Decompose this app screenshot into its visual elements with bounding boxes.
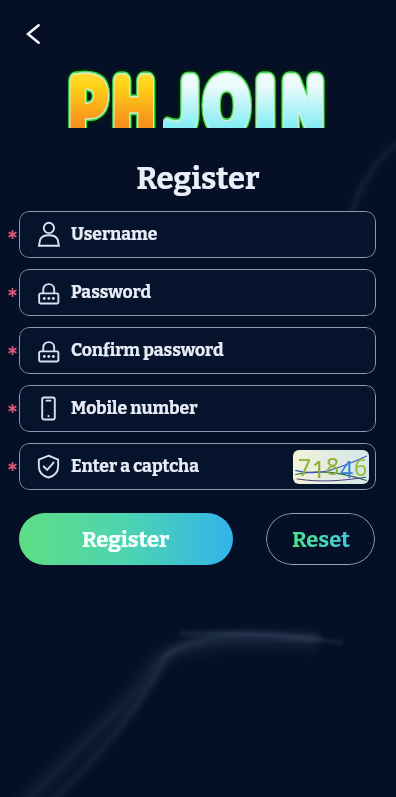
staticText: JOIN — [163, 48, 329, 128]
staticText: Enter a captcha — [71, 456, 199, 477]
staticText: 8 — [326, 450, 340, 481]
staticText: JOIN — [163, 48, 329, 128]
staticText: Mobile number — [71, 398, 198, 419]
button[interactable]: Mobile number — [19, 385, 376, 432]
staticText: Register — [0, 160, 396, 197]
staticText: 7 — [298, 451, 312, 482]
button[interactable]: Back — [11, 12, 53, 54]
staticText: 1 — [312, 453, 326, 484]
button[interactable]: Register — [19, 513, 233, 565]
staticText: PH — [67, 48, 160, 128]
staticText: Register — [82, 526, 170, 552]
button[interactable]: Confirm password — [19, 327, 376, 374]
staticText: Reset — [292, 526, 350, 552]
staticText: JOIN — [163, 48, 329, 128]
staticText: Username — [71, 224, 158, 245]
staticText: PH — [67, 48, 160, 128]
staticText: JOIN — [163, 48, 329, 128]
button[interactable]: Password — [19, 269, 376, 316]
button[interactable]: Enter a captcha — [19, 443, 376, 490]
button[interactable]: Refresh captcha — [293, 450, 369, 484]
staticText: Confirm password — [71, 340, 224, 361]
staticText: PH — [67, 48, 160, 128]
button[interactable]: Reset — [266, 513, 375, 565]
staticText: 4 — [340, 453, 354, 484]
staticText: PH — [67, 48, 160, 128]
staticText: PH — [67, 48, 160, 128]
staticText: JOIN — [163, 48, 329, 128]
button[interactable]: Username — [19, 211, 376, 258]
staticText: 6 — [354, 451, 367, 482]
staticText: Password — [71, 282, 152, 303]
